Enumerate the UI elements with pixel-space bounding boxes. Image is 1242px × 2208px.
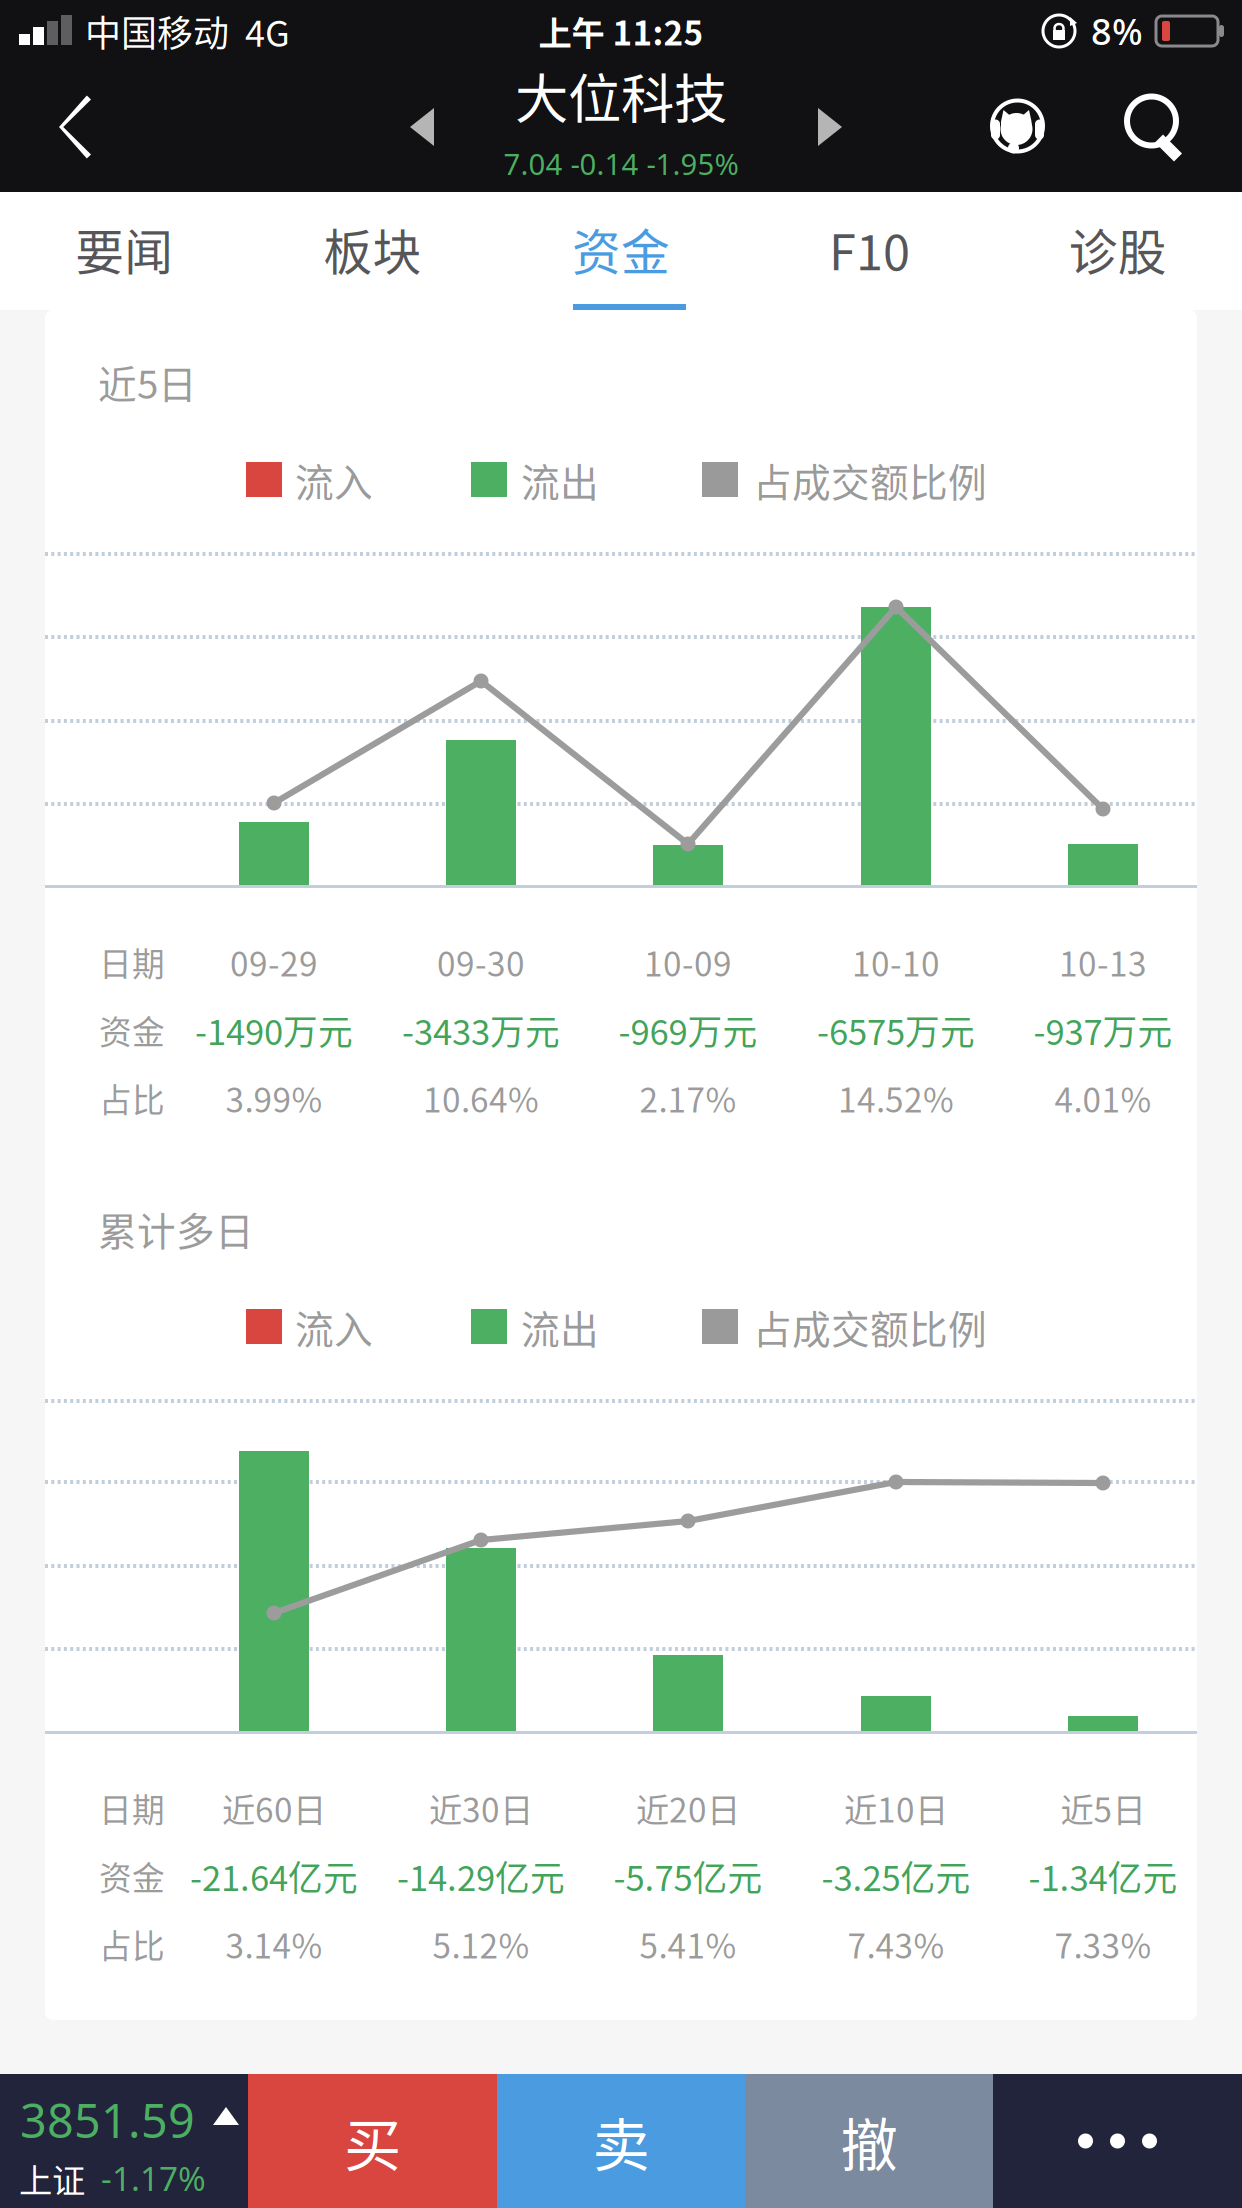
button[interactable]: 撤 (745, 2074, 993, 2208)
staticText: 10-09 (644, 938, 732, 986)
staticText: 占比 (99, 1920, 165, 1968)
staticText: 10-13 (1059, 938, 1147, 986)
staticText: -969万元 (618, 1005, 757, 1055)
button[interactable]: 要闻 (0, 192, 248, 310)
staticText: -3433万元 (402, 1005, 560, 1055)
staticText: 大位科技 (515, 57, 727, 134)
staticText: 占比 (99, 1074, 165, 1122)
staticText: 10.64% (423, 1074, 539, 1122)
staticText: 3851.59 (20, 2089, 195, 2151)
staticText: -14.29亿元 (397, 1851, 565, 1901)
staticText: 7.43% (847, 1920, 944, 1968)
staticText: 近5日 (1060, 1784, 1145, 1832)
staticText: -937万元 (1033, 1005, 1172, 1055)
button[interactable]: 诊股 (994, 192, 1242, 310)
button[interactable]: 返回 (32, 69, 118, 184)
button[interactable]: 客服 (961, 68, 1074, 185)
staticText: -5.75亿元 (613, 1851, 762, 1901)
staticText: 要闻 (75, 214, 173, 284)
button[interactable]: 下一只 (788, 78, 872, 176)
staticText: 撤 (840, 2099, 897, 2182)
button[interactable]: 买 (248, 2074, 497, 2208)
staticText: -6575万元 (817, 1005, 975, 1055)
staticText: 近30日 (429, 1784, 533, 1832)
staticText: 5.12% (432, 1920, 529, 1968)
staticText: 日期 (99, 1784, 165, 1832)
staticText: 买 (344, 2099, 401, 2182)
staticText: 3.14% (225, 1920, 322, 1968)
staticText: 14.52% (838, 1074, 954, 1122)
staticText: 近5日 (98, 354, 197, 410)
button[interactable]: 上证指数 (0, 2074, 248, 2208)
staticText: 流出 (521, 1299, 599, 1355)
staticText: -21.64亿元 (190, 1851, 358, 1901)
staticText: 09-30 (437, 938, 525, 986)
button[interactable]: 更多 (993, 2074, 1242, 2208)
staticText: 占成交额比例 (753, 452, 987, 508)
staticText: 近60日 (222, 1784, 326, 1832)
staticText: 诊股 (1069, 214, 1167, 284)
button[interactable]: F10 (745, 192, 994, 310)
staticText: -1490万元 (195, 1005, 353, 1055)
staticText: 上证 (19, 2154, 85, 2202)
staticText: 09-29 (230, 938, 318, 986)
staticText: 板块 (324, 214, 422, 284)
staticText: 流出 (521, 452, 599, 508)
staticText: 资金 (572, 214, 670, 284)
staticText: 上午 11:25 (538, 7, 703, 55)
staticText: 4.01% (1054, 1074, 1151, 1122)
staticText: 5.41% (639, 1920, 736, 1968)
staticText: 7.33% (1054, 1920, 1151, 1968)
staticText: 3.99% (225, 1074, 322, 1122)
staticText: 7.04 -0.14 -1.95% (503, 144, 738, 183)
staticText: 流入 (295, 1299, 373, 1355)
button[interactable]: 资金 (497, 192, 745, 310)
staticText: 2.17% (639, 1074, 736, 1122)
staticText: 卖 (592, 2099, 649, 2182)
staticText: 流入 (295, 452, 373, 508)
staticText: 近10日 (844, 1784, 948, 1832)
staticText: 10-10 (852, 938, 940, 986)
button[interactable]: 板块 (248, 192, 497, 310)
staticText: -1.17% (101, 2156, 206, 2200)
staticText: 8% (1091, 7, 1143, 55)
staticText: 资金 (99, 1852, 165, 1900)
staticText: -3.25亿元 (821, 1851, 970, 1901)
staticText: 占成交额比例 (753, 1299, 987, 1355)
button[interactable]: 卖 (497, 2074, 745, 2208)
staticText: -1.34亿元 (1028, 1851, 1177, 1901)
staticText: 资金 (99, 1006, 165, 1054)
staticText: 日期 (99, 938, 165, 986)
staticText: F10 (829, 214, 910, 284)
button[interactable]: 上一只 (380, 78, 464, 176)
staticText: 中国移动 4G (85, 5, 290, 57)
button[interactable]: 搜索 (1099, 70, 1213, 187)
staticText: 近20日 (636, 1784, 740, 1832)
staticText: 累计多日 (98, 1201, 254, 1257)
